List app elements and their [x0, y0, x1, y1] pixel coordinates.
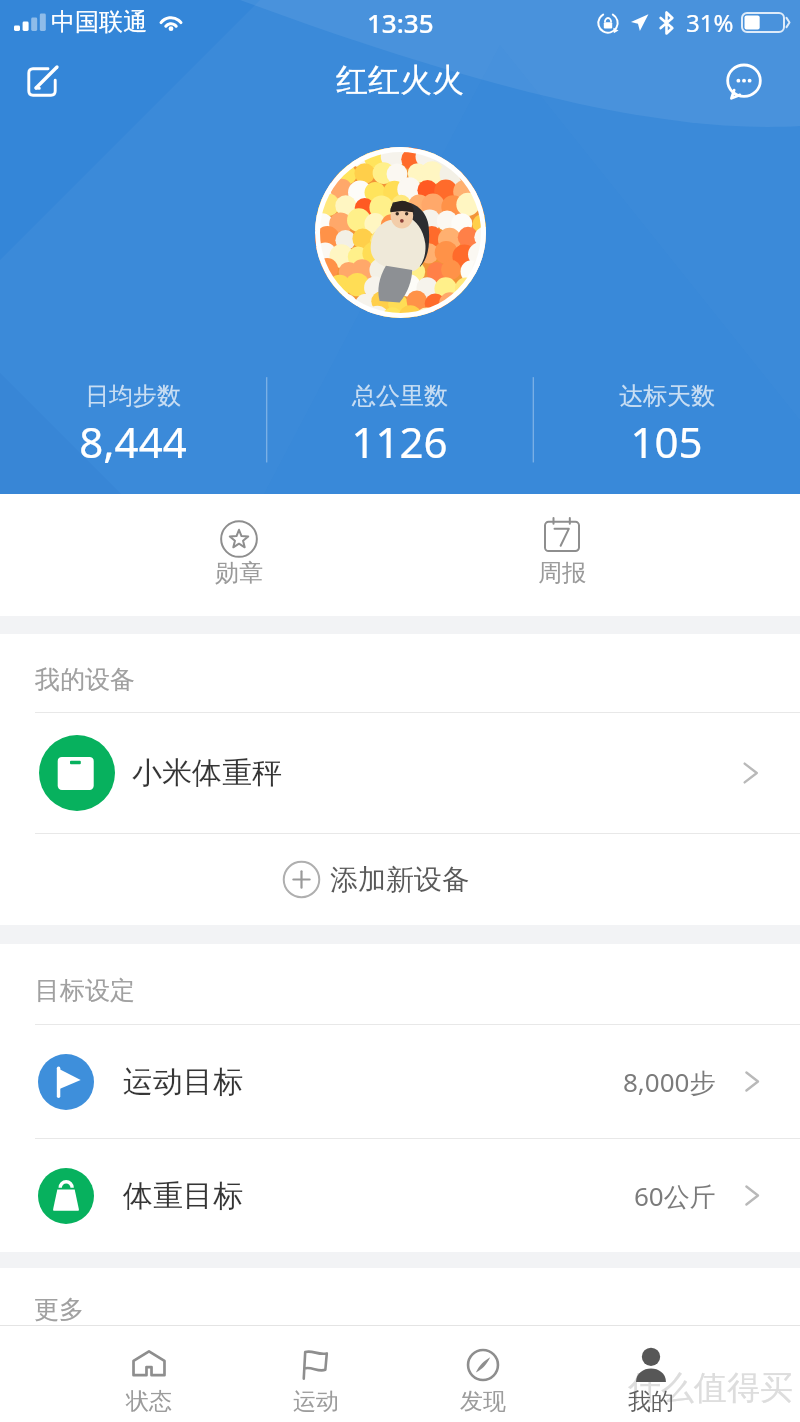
button[interactable]: 达标天数: [533, 373, 800, 470]
button[interactable]: 运动目标: [0, 1025, 800, 1138]
button[interactable]: 总公里数: [266, 373, 533, 470]
staticText: 105: [630, 413, 703, 470]
button[interactable]: 勋章: [159, 494, 319, 616]
staticText: 红红火火: [336, 60, 464, 100]
button[interactable]: 发现: [399, 1326, 567, 1416]
staticText: 发现: [460, 1387, 506, 1416]
staticText: 我的设备: [35, 664, 135, 695]
staticText: 目标设定: [35, 975, 135, 1006]
staticText: 运动: [293, 1387, 339, 1416]
button[interactable]: Edit profile: [12, 52, 72, 112]
staticText: 日均步数: [85, 381, 181, 411]
staticText: 中国联通: [51, 7, 147, 37]
staticText: 小米体重秤: [132, 754, 282, 792]
staticText: 60公斤: [634, 1178, 716, 1214]
staticText: 体重目标: [123, 1177, 243, 1215]
staticText: 周报: [538, 558, 586, 588]
staticText: 总公里数: [352, 381, 448, 411]
button[interactable]: Messages: [714, 52, 774, 112]
staticText: 8,444: [79, 413, 187, 470]
staticText: 我的: [628, 1387, 674, 1416]
button[interactable]: 添加新设备: [0, 834, 800, 925]
staticText: 13:35: [367, 5, 434, 40]
staticText: 达标天数: [619, 381, 715, 411]
staticText: 勋章: [215, 558, 263, 588]
staticText: 1126: [351, 413, 448, 470]
staticText: 31%: [686, 6, 734, 39]
button[interactable]: Profile picture: [315, 147, 486, 318]
button[interactable]: 体重目标: [0, 1139, 800, 1252]
staticText: 添加新设备: [330, 862, 470, 897]
button[interactable]: 日均步数: [0, 373, 266, 470]
staticText: 什么值得买: [628, 1367, 793, 1409]
staticText: 8,000步: [623, 1064, 716, 1100]
staticText: 状态: [126, 1387, 172, 1416]
button[interactable]: 状态: [65, 1326, 232, 1416]
button[interactable]: 小米体重秤: [0, 713, 800, 833]
staticText: 运动目标: [123, 1063, 243, 1101]
button[interactable]: 运动: [232, 1326, 399, 1416]
staticText: 更多: [34, 1294, 84, 1325]
button[interactable]: 周报: [482, 494, 642, 616]
button[interactable]: 我的: [567, 1326, 735, 1416]
